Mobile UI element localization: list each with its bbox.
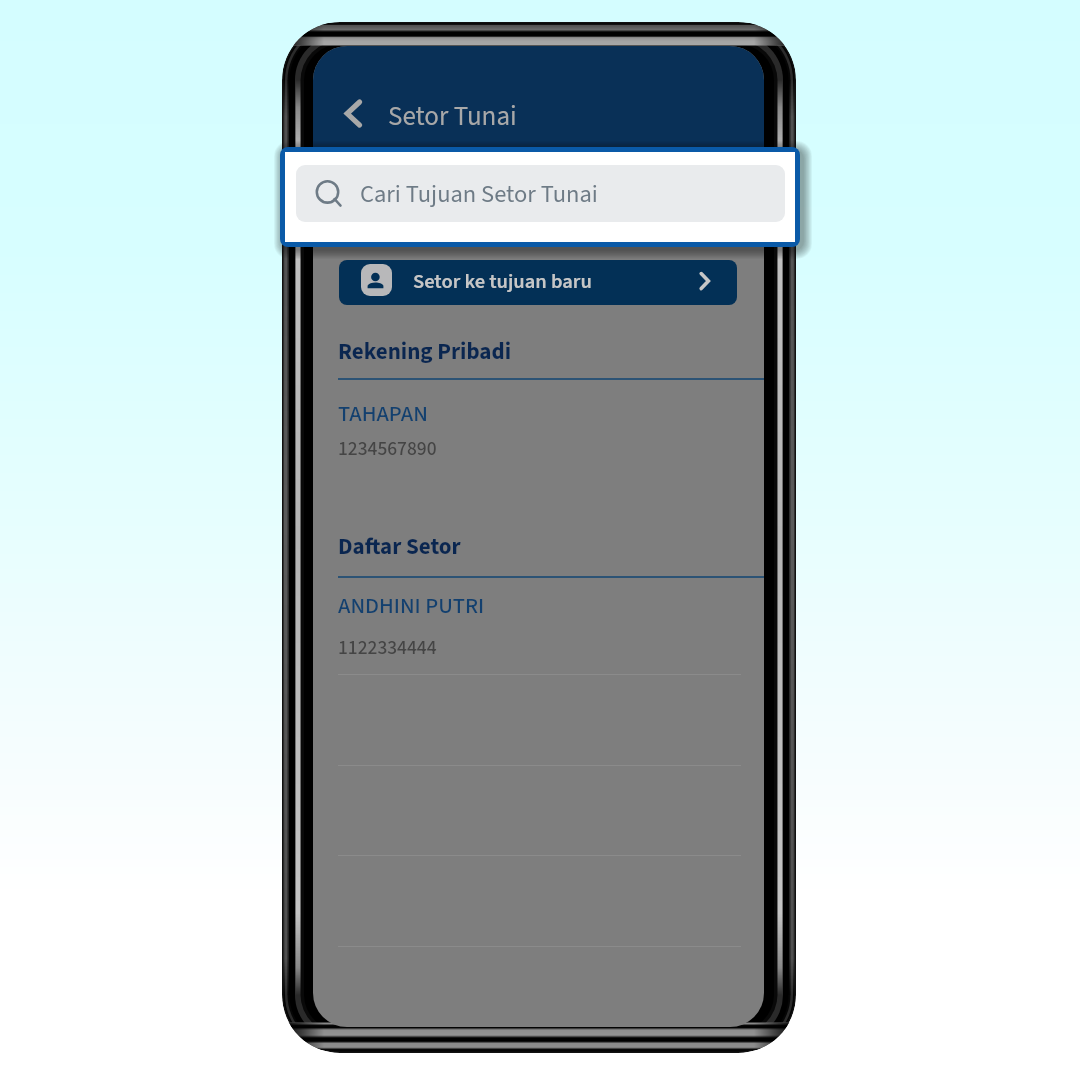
staticText: Setor ke tujuan baru <box>413 267 592 296</box>
staticText: 1122334444 <box>338 634 437 662</box>
button[interactable]: TAHAPAN <box>338 398 428 430</box>
staticText: Daftar Setor <box>338 530 461 563</box>
staticText: Cari Tujuan Setor Tunai <box>360 177 598 212</box>
staticText: Rekening Pribadi <box>338 335 511 368</box>
button[interactable]: Setor ke tujuan baru <box>339 260 737 305</box>
button[interactable]: ANDHINI PUTRI <box>338 590 485 622</box>
button[interactable]: Cari Tujuan Setor Tunai <box>285 152 795 242</box>
staticText: Setor Tunai <box>388 97 517 135</box>
staticText: 1234567890 <box>338 435 437 463</box>
button[interactable]: Back <box>334 89 373 128</box>
